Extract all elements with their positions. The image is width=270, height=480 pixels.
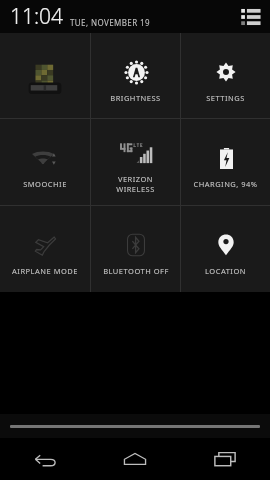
staticText: BLUETOOTH OFF	[103, 266, 169, 276]
button[interactable]: Back	[0, 438, 90, 480]
staticText: CHARGING, 94%	[193, 179, 258, 189]
button[interactable]: BRIGHTNESS	[91, 33, 180, 118]
button[interactable]: BLUETOOTH OFF	[91, 206, 180, 292]
button[interactable]: Notifications list	[239, 6, 261, 28]
staticText: TUE, NOVEMBER 19	[70, 17, 150, 28]
button[interactable]: SMOOCHIE	[0, 119, 90, 205]
button[interactable]: SETTINGS	[181, 33, 270, 118]
staticText: BRIGHTNESS	[110, 93, 161, 103]
staticText: SMOOCHIE	[23, 179, 67, 189]
button[interactable]: Home	[90, 438, 180, 480]
button[interactable]: CHARGING, 94%	[181, 119, 270, 205]
button[interactable]: LOCATION	[181, 206, 270, 292]
staticText: VERIZON WIRELESS	[116, 174, 155, 194]
button[interactable]: AIRPLANE MODE	[0, 206, 90, 292]
staticText: 11:04	[10, 2, 64, 31]
staticText: LOCATION	[205, 266, 246, 276]
staticText: SETTINGS	[206, 93, 245, 103]
button[interactable]: VERIZON WIRELESS	[91, 119, 180, 205]
button[interactable]: User profile	[0, 33, 90, 118]
staticText: AIRPLANE MODE	[12, 266, 78, 276]
button[interactable]: Recents	[180, 438, 270, 480]
